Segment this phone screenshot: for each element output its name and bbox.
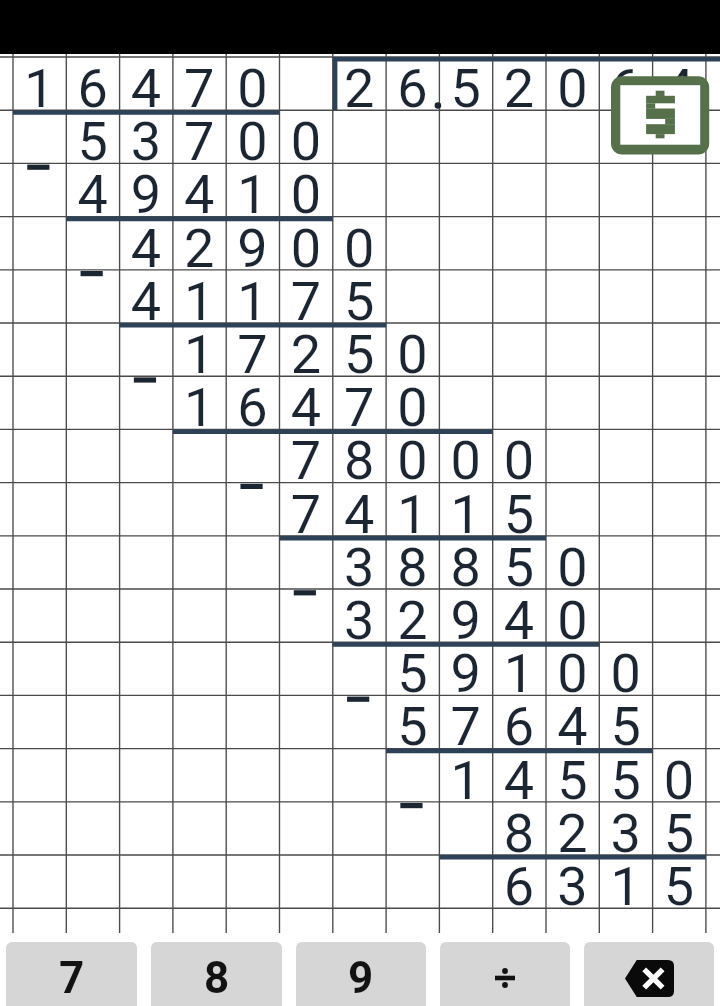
staticText: 8 <box>204 952 230 1004</box>
button[interactable]: 7 <box>6 942 137 1006</box>
button[interactable]: 9 <box>296 942 426 1006</box>
staticText: 7 <box>59 952 85 1004</box>
button[interactable]: 8 <box>151 942 282 1006</box>
button[interactable]: Divide <box>440 942 570 1006</box>
staticText: 9 <box>348 952 374 1004</box>
button[interactable]: Backspace <box>584 942 714 1006</box>
